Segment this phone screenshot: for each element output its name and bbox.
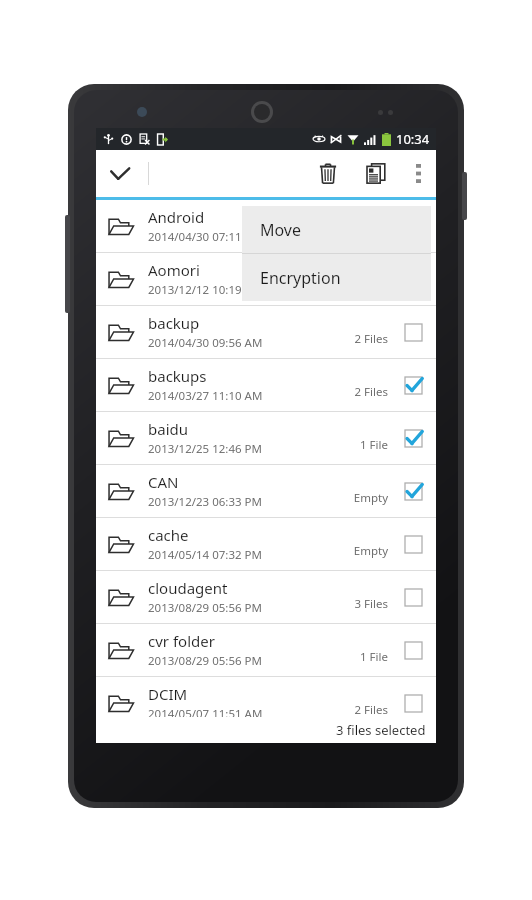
staticText: 3 files selected <box>336 721 426 739</box>
staticText: Android <box>148 207 205 227</box>
button[interactable]: Selected <box>398 423 428 453</box>
button[interactable]: More options <box>400 150 436 197</box>
staticText: backup <box>148 313 200 333</box>
button[interactable]: backups <box>96 359 436 411</box>
button[interactable]: backup <box>96 306 436 358</box>
button[interactable]: baidu <box>96 412 436 464</box>
button[interactable]: Not selected <box>398 317 428 347</box>
staticText: 2 Files <box>354 384 388 400</box>
staticText: cloudagent <box>148 578 228 598</box>
button[interactable]: Android <box>96 200 436 252</box>
staticText: DCIM <box>148 684 188 704</box>
staticText: 2 Files <box>354 331 388 347</box>
staticText: cvr folder <box>148 631 215 651</box>
staticText: Move <box>260 219 302 241</box>
staticText: 2014/05/14 07:32 PM <box>148 547 262 563</box>
button[interactable]: Not selected <box>398 529 428 559</box>
button[interactable]: Encryption <box>242 254 431 301</box>
staticText: CAN <box>148 472 179 492</box>
staticText: 1 File <box>360 649 388 665</box>
staticText: Encryption <box>260 267 341 289</box>
staticText: 2013/12/25 12:46 PM <box>148 441 262 457</box>
staticText: 2013/12/23 06:33 PM <box>148 494 262 510</box>
staticText: 2013/12/12 10:19 AM <box>148 282 263 298</box>
staticText: 2013/08/29 05:56 PM <box>148 653 262 669</box>
staticText: 2013/08/29 05:56 PM <box>148 600 262 616</box>
button[interactable]: Move <box>242 206 431 253</box>
staticText: 2014/04/30 09:56 AM <box>148 335 263 351</box>
button[interactable]: Delete <box>304 150 352 197</box>
button[interactable]: Aomori <box>96 253 436 305</box>
button[interactable]: Selected <box>398 476 428 506</box>
staticText: 10:34 <box>396 130 430 148</box>
staticText: 3 Files <box>354 596 388 612</box>
staticText: Aomori <box>148 260 200 280</box>
staticText: 2014/04/30 07:11 AM <box>148 229 263 245</box>
button[interactable]: Copy <box>352 150 400 197</box>
staticText: Empty <box>353 490 388 506</box>
button[interactable]: Selected <box>398 370 428 400</box>
button[interactable]: Not selected <box>398 635 428 665</box>
button[interactable]: Done <box>96 150 144 197</box>
button[interactable]: cache <box>96 518 436 570</box>
staticText: backups <box>148 366 207 386</box>
staticText: 1 File <box>360 437 388 453</box>
button[interactable]: cloudagent <box>96 571 436 623</box>
staticText: Empty <box>353 543 388 559</box>
staticText: baidu <box>148 419 189 439</box>
button[interactable]: DCIM <box>96 677 436 729</box>
button[interactable]: cvr folder <box>96 624 436 676</box>
staticText: 2014/03/27 11:10 AM <box>148 388 263 404</box>
button[interactable]: Not selected <box>398 582 428 612</box>
staticText: cache <box>148 525 189 545</box>
button[interactable]: CAN <box>96 465 436 517</box>
staticText: 2014/05/07 11:51 AM <box>148 706 263 722</box>
button[interactable]: Not selected <box>398 688 428 718</box>
staticText: 2 Files <box>354 702 388 718</box>
